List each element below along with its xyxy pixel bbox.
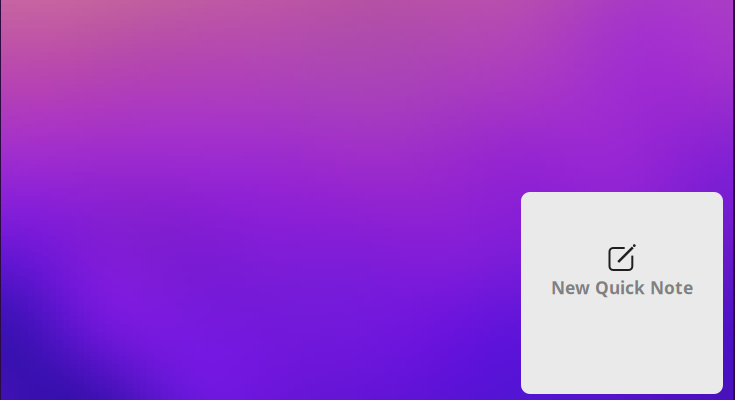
staticText: New Quick Note (551, 276, 693, 299)
button[interactable]: New Quick Note (521, 192, 723, 394)
